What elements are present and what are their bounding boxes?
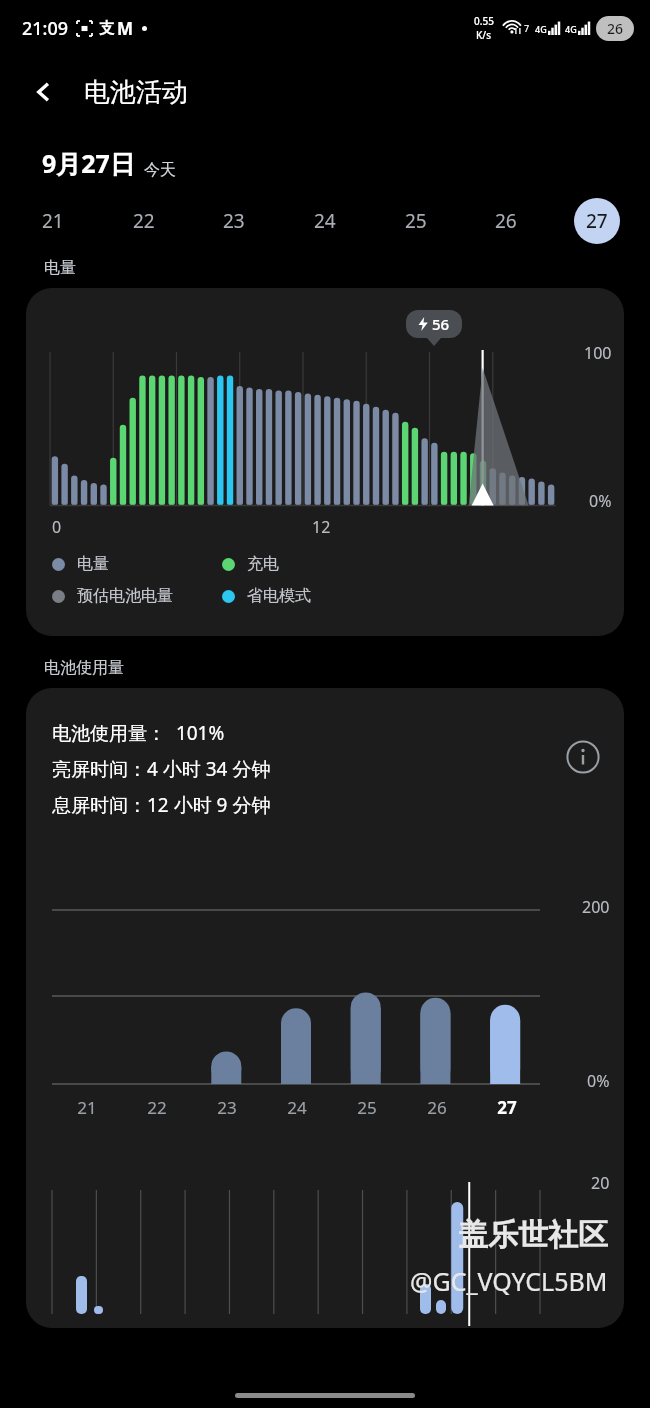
button[interactable]: 24	[302, 198, 348, 244]
staticText: 电量	[77, 554, 109, 574]
staticText: 9月27日	[42, 146, 135, 180]
staticText: 56	[432, 314, 450, 334]
staticText: 23	[217, 1096, 237, 1119]
button[interactable]: 25	[393, 198, 439, 244]
staticText: 电池使用量	[44, 658, 124, 678]
staticText: 20	[591, 1172, 610, 1194]
staticText: 24	[287, 1096, 307, 1119]
button[interactable]: 100	[26, 288, 624, 636]
staticText: 7	[524, 22, 530, 34]
button[interactable]: 电池使用量： 101%	[26, 688, 624, 1328]
staticText: 26	[427, 1096, 447, 1119]
staticText: 27	[497, 1096, 517, 1119]
staticText: 21	[77, 1096, 97, 1119]
button[interactable]: 23	[211, 198, 257, 244]
staticText: 23	[223, 208, 245, 234]
staticText: 亮屏时间：4 小时 34 分钟	[52, 756, 271, 782]
staticText: 21:09	[22, 16, 69, 41]
staticText: 预估电池电量	[77, 586, 173, 606]
staticText: 100	[584, 342, 612, 364]
staticText: 0.55	[474, 14, 494, 28]
staticText: @GC_VQYCL5BM	[410, 1264, 608, 1298]
button[interactable]: 27	[574, 198, 620, 244]
staticText: 电量	[44, 258, 76, 278]
button[interactable]: 21	[30, 198, 76, 244]
button[interactable]: 返回	[18, 66, 70, 118]
staticText: 4G	[565, 23, 577, 35]
staticText: 充电	[247, 554, 279, 574]
staticText: 26	[607, 19, 624, 38]
staticText: 省电模式	[247, 586, 311, 606]
button[interactable]: 22	[121, 198, 167, 244]
staticText: 0	[52, 516, 62, 538]
staticText: 24	[314, 208, 336, 234]
staticText: 22	[133, 208, 155, 234]
staticText: 27	[586, 208, 608, 234]
staticText: M	[117, 17, 134, 40]
staticText: 盖乐世社区	[458, 1216, 608, 1254]
staticText: 26	[495, 208, 517, 234]
staticText: 22	[147, 1096, 167, 1119]
staticText: 今天	[144, 160, 176, 180]
staticText: 4G	[535, 23, 547, 35]
button[interactable]: 26	[483, 198, 529, 244]
staticText: 电池活动	[84, 76, 188, 109]
button[interactable]: 信息	[564, 738, 602, 776]
staticText: 电池使用量： 101%	[52, 720, 225, 746]
staticText: 25	[357, 1096, 377, 1119]
staticText: 12	[312, 516, 331, 538]
staticText: 支	[99, 19, 114, 38]
staticText: 息屏时间：12 小时 9 分钟	[52, 792, 271, 818]
staticText: 200	[582, 896, 610, 918]
staticText: 0%	[587, 1070, 610, 1092]
staticText: 0%	[589, 490, 612, 512]
staticText: 21	[42, 208, 64, 234]
staticText: 25	[405, 208, 427, 234]
staticText: K/s	[476, 28, 492, 42]
